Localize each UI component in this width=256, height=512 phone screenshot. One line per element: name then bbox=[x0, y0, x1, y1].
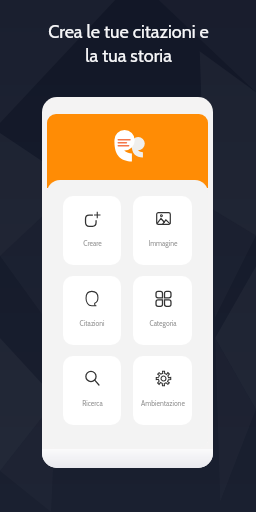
button[interactable]: Ambientazione bbox=[133, 356, 192, 425]
button[interactable]: Ricerca bbox=[63, 356, 121, 425]
staticText: Citazioni bbox=[79, 319, 105, 327]
staticText: Creare bbox=[83, 239, 102, 247]
button[interactable]: Immagine bbox=[133, 196, 192, 265]
staticText: Immagine bbox=[148, 239, 178, 247]
staticText: Ambientazione bbox=[141, 399, 185, 407]
staticText: Crea le tue citazioni e la tua storia bbox=[48, 21, 209, 67]
staticText: Ricerca bbox=[82, 399, 103, 407]
button[interactable]: Creare bbox=[63, 196, 121, 265]
button[interactable]: Categoria bbox=[133, 276, 192, 345]
button[interactable]: Citazioni bbox=[63, 276, 121, 345]
staticText: Categoria bbox=[149, 319, 177, 327]
